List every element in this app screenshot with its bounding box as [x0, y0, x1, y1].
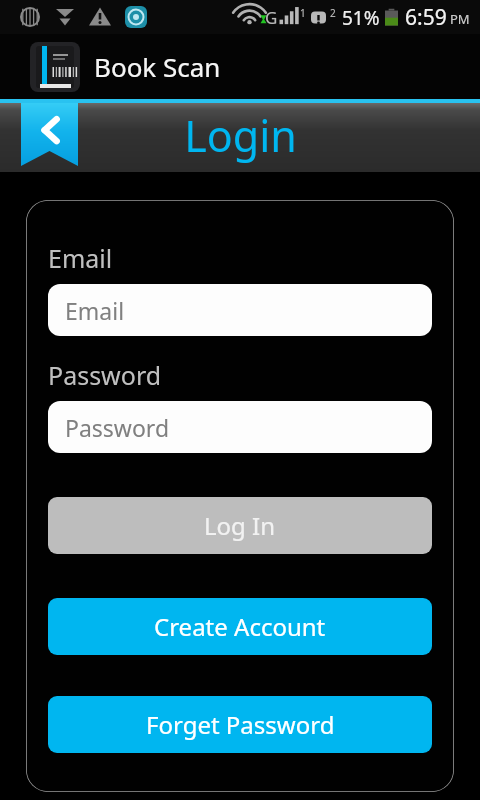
staticText: Email	[48, 241, 113, 275]
staticText: 1	[300, 6, 306, 20]
staticText: Password	[65, 412, 170, 443]
button[interactable]: Log In	[48, 497, 432, 554]
staticText: G	[265, 6, 278, 29]
staticText: Login	[184, 106, 297, 165]
button[interactable]: Email	[48, 284, 432, 336]
button[interactable]: Create Account	[48, 598, 432, 655]
staticText: Forget Password	[146, 708, 335, 741]
staticText: Email	[65, 295, 125, 326]
staticText: Create Account	[154, 610, 326, 643]
button[interactable]: Back	[21, 103, 78, 166]
staticText: 51%	[342, 5, 380, 31]
staticText: 6:59	[405, 3, 447, 32]
staticText: Password	[48, 358, 162, 392]
staticText: PM	[450, 10, 470, 28]
staticText: Log In	[204, 509, 276, 542]
button[interactable]: Forget Password	[48, 696, 432, 753]
staticText: Book Scan	[94, 49, 221, 84]
button[interactable]: Password	[48, 401, 432, 453]
staticText: 2	[330, 6, 336, 20]
